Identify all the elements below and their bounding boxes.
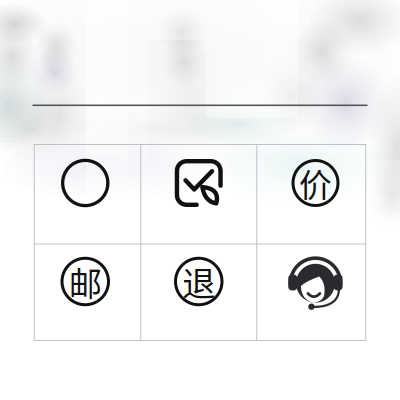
staticText: 邮 — [69, 257, 102, 306]
staticText: 价 — [299, 159, 332, 207]
staticText: 退 — [182, 257, 215, 306]
button[interactable]: Returns — [141, 244, 257, 341]
button[interactable]: Price — [257, 144, 366, 244]
button[interactable]: Mail — [34, 244, 141, 341]
button[interactable]: Support — [257, 244, 366, 341]
button[interactable]: Orders — [141, 144, 257, 244]
button[interactable]: Select — [34, 144, 141, 244]
